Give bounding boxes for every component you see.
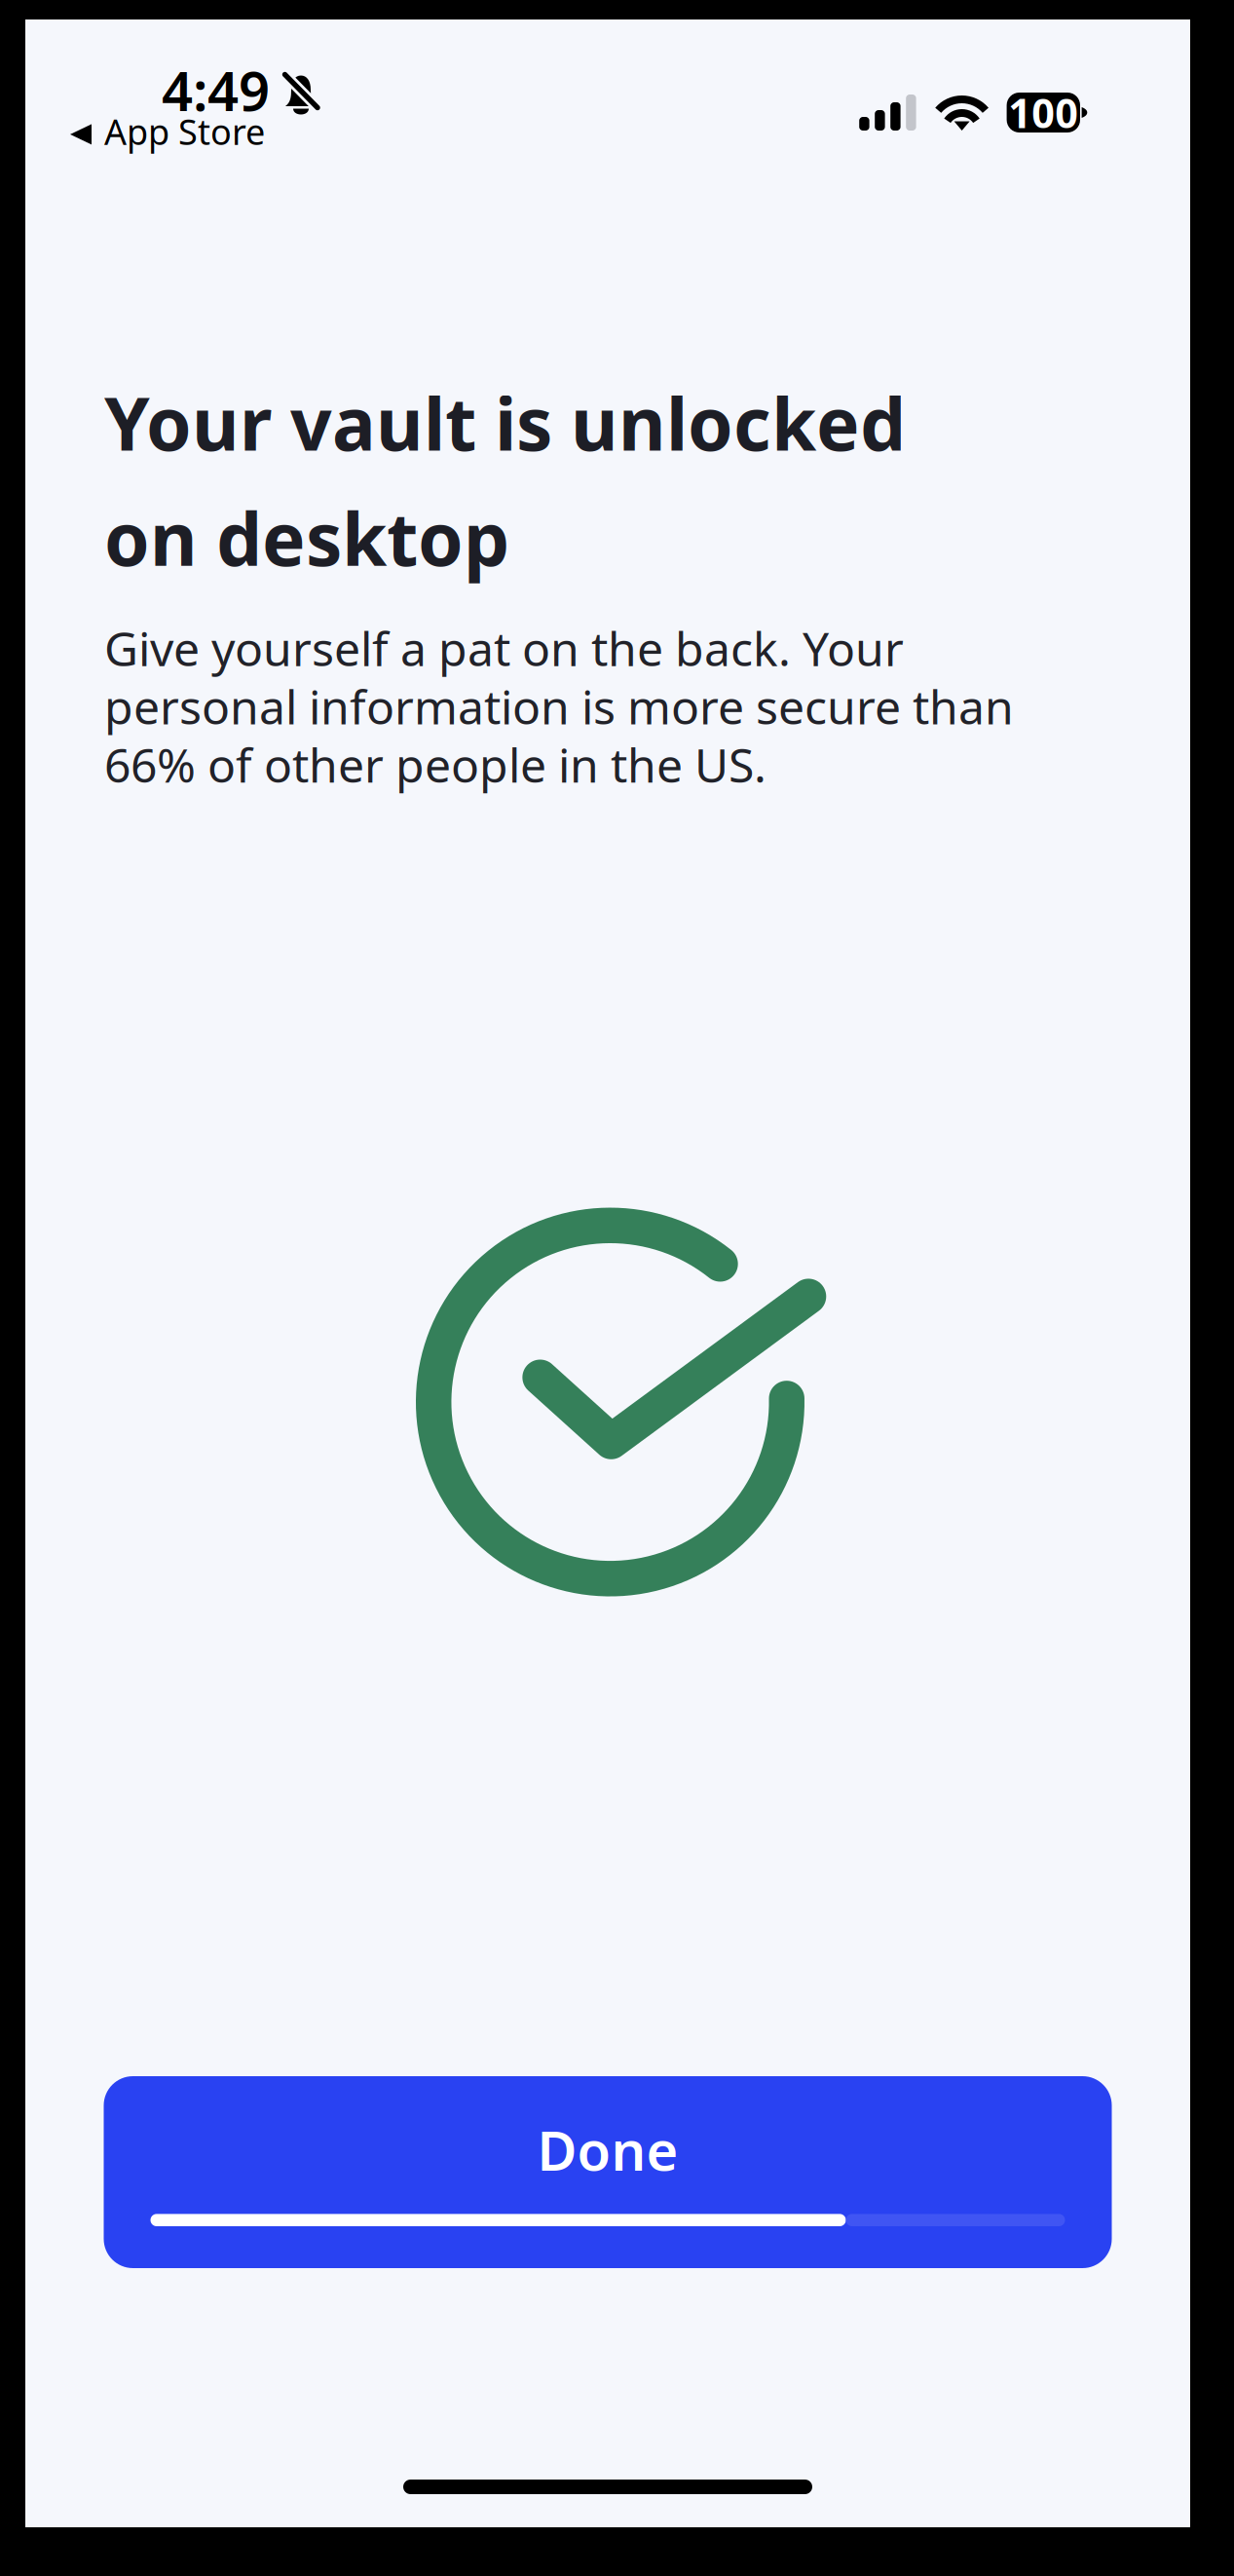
staticText: Give yourself a pat on the back. Your [104, 617, 904, 679]
staticText: 4:49 [162, 54, 270, 126]
button[interactable]: App Store [70, 108, 265, 155]
staticText: 66% of other people in the US. [104, 733, 767, 796]
staticText: personal information is more secure than [104, 675, 1014, 737]
staticText: Your vault is unlocked [104, 374, 906, 471]
staticText: App Store [104, 108, 265, 155]
staticText: on desktop [104, 489, 509, 586]
staticText: 100 [1008, 86, 1078, 139]
button[interactable]: Done [104, 2076, 1112, 2268]
staticText: Done [537, 2113, 678, 2186]
